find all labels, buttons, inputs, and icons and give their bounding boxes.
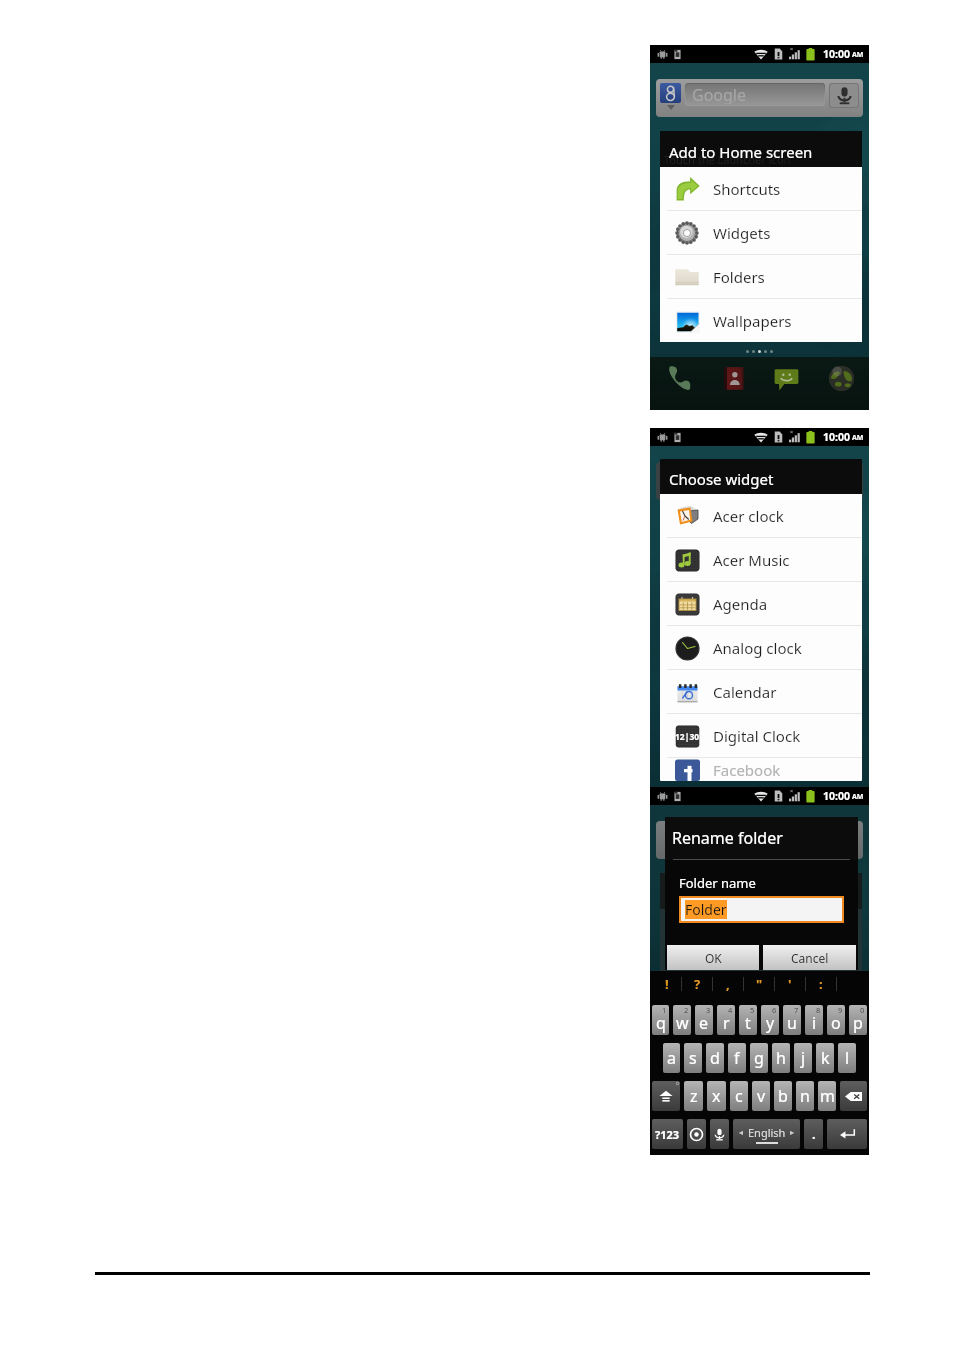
staticText: 5 [750, 1005, 755, 1015]
button[interactable]: s [684, 1043, 702, 1073]
button[interactable]: ! [652, 971, 681, 997]
button[interactable]: g [750, 1043, 768, 1073]
staticText: o [831, 1012, 841, 1034]
staticText: q [656, 1012, 666, 1034]
button[interactable]: Calendar [660, 670, 862, 713]
staticText: ▸ [790, 1128, 795, 1137]
button[interactable]: Backspace [840, 1081, 867, 1111]
staticText: Digital Clock [713, 726, 801, 746]
staticText: : [819, 975, 823, 993]
button[interactable]: Messaging [772, 364, 801, 393]
staticText: Acer Music [713, 550, 790, 570]
button[interactable]: Enter [827, 1119, 867, 1149]
button[interactable]: Widgets [660, 211, 862, 254]
button[interactable]: : [806, 971, 836, 997]
button[interactable]: Shortcuts [660, 167, 862, 210]
button[interactable]: 0 [849, 1005, 867, 1035]
button[interactable]: j [794, 1043, 812, 1073]
button[interactable]: Acer Music [660, 538, 862, 581]
staticText: Facebook [713, 760, 781, 780]
staticText: 0 [860, 1005, 865, 1015]
button[interactable]: 2 [673, 1005, 691, 1035]
staticText: w [676, 1012, 689, 1034]
button[interactable]: 1 [652, 1005, 669, 1035]
button[interactable]: , [713, 971, 743, 997]
button[interactable]: Input settings [687, 1119, 706, 1149]
button[interactable]: 8 [805, 1005, 823, 1035]
button[interactable]: a [663, 1043, 680, 1073]
staticText: g [754, 1047, 764, 1069]
staticText: Calendar [713, 682, 777, 702]
staticText: b [778, 1085, 788, 1107]
button[interactable]: Folders [660, 255, 862, 298]
button[interactable]: Shift [652, 1081, 680, 1111]
button[interactable]: OK [667, 945, 759, 970]
staticText: Choose widget [669, 469, 774, 489]
button[interactable]: 4 [717, 1005, 735, 1035]
staticText: Google [692, 84, 747, 104]
button[interactable]: h [772, 1043, 790, 1073]
staticText: Rename folder [672, 827, 783, 849]
button[interactable]: 6 [761, 1005, 779, 1035]
staticText: 10:00 [823, 47, 850, 61]
button[interactable]: x [707, 1081, 726, 1111]
button[interactable]: Agenda [660, 582, 862, 625]
button[interactable]: b [774, 1081, 792, 1111]
button[interactable]: Acer clock [660, 494, 862, 537]
button[interactable]: " [744, 971, 774, 997]
button[interactable]: f [728, 1043, 746, 1073]
staticText: 10:00 [823, 430, 850, 444]
button[interactable]: Voice input [710, 1119, 729, 1149]
button[interactable]: Browser [827, 364, 856, 393]
button[interactable]: d [706, 1043, 724, 1073]
staticText: h [776, 1047, 786, 1069]
button[interactable]: . [804, 1119, 823, 1149]
staticText: 8 [816, 1005, 821, 1015]
button[interactable]: Contacts [719, 364, 748, 393]
staticText: 6 [772, 1005, 777, 1015]
button[interactable]: Cancel [763, 945, 856, 970]
button[interactable]: l [838, 1043, 856, 1073]
staticText: . [812, 1125, 816, 1143]
staticText: ! [665, 975, 669, 993]
button[interactable]: z [684, 1081, 703, 1111]
button[interactable]: ' [775, 971, 805, 997]
button[interactable]: ?123 [652, 1119, 683, 1149]
button[interactable]: ? [682, 971, 712, 997]
button[interactable]: c [730, 1081, 748, 1111]
button[interactable]: Voice search [830, 84, 858, 107]
staticText: Analog clock [713, 638, 802, 658]
staticText: ?123 [655, 1127, 680, 1142]
button[interactable]: 9 [827, 1005, 845, 1035]
button[interactable]: k [816, 1043, 834, 1073]
button[interactable]: Phone [664, 364, 693, 393]
button[interactable]: Wallpapers [660, 299, 862, 342]
button[interactable]: v [752, 1081, 770, 1111]
staticText: 10:00 [823, 789, 850, 803]
staticText: OK [705, 950, 722, 966]
button[interactable]: 12|30 [660, 714, 862, 757]
button[interactable]: Google [656, 79, 863, 117]
staticText: a [667, 1047, 676, 1069]
staticText: Add to Home screen [669, 142, 813, 162]
staticText: t [745, 1012, 751, 1034]
staticText: 9 [838, 1005, 843, 1015]
button[interactable]: Analog clock [660, 626, 862, 669]
staticText: v [757, 1085, 766, 1107]
button[interactable]: 5 [739, 1005, 757, 1035]
staticText: x [712, 1085, 721, 1107]
button[interactable]: 3 [695, 1005, 713, 1035]
button[interactable]: m [818, 1081, 836, 1111]
staticText: i [812, 1012, 817, 1034]
staticText: j [801, 1047, 806, 1069]
staticText: Agenda [713, 594, 768, 614]
button[interactable]: 7 [783, 1005, 801, 1035]
staticText: AM [852, 792, 864, 802]
staticText: r [723, 1012, 730, 1034]
button[interactable]: Facebook [660, 758, 862, 781]
button[interactable]: ◂ [733, 1119, 800, 1149]
button[interactable]: n [796, 1081, 814, 1111]
staticText: Folder name [679, 874, 756, 892]
staticText: 1 [662, 1005, 667, 1015]
